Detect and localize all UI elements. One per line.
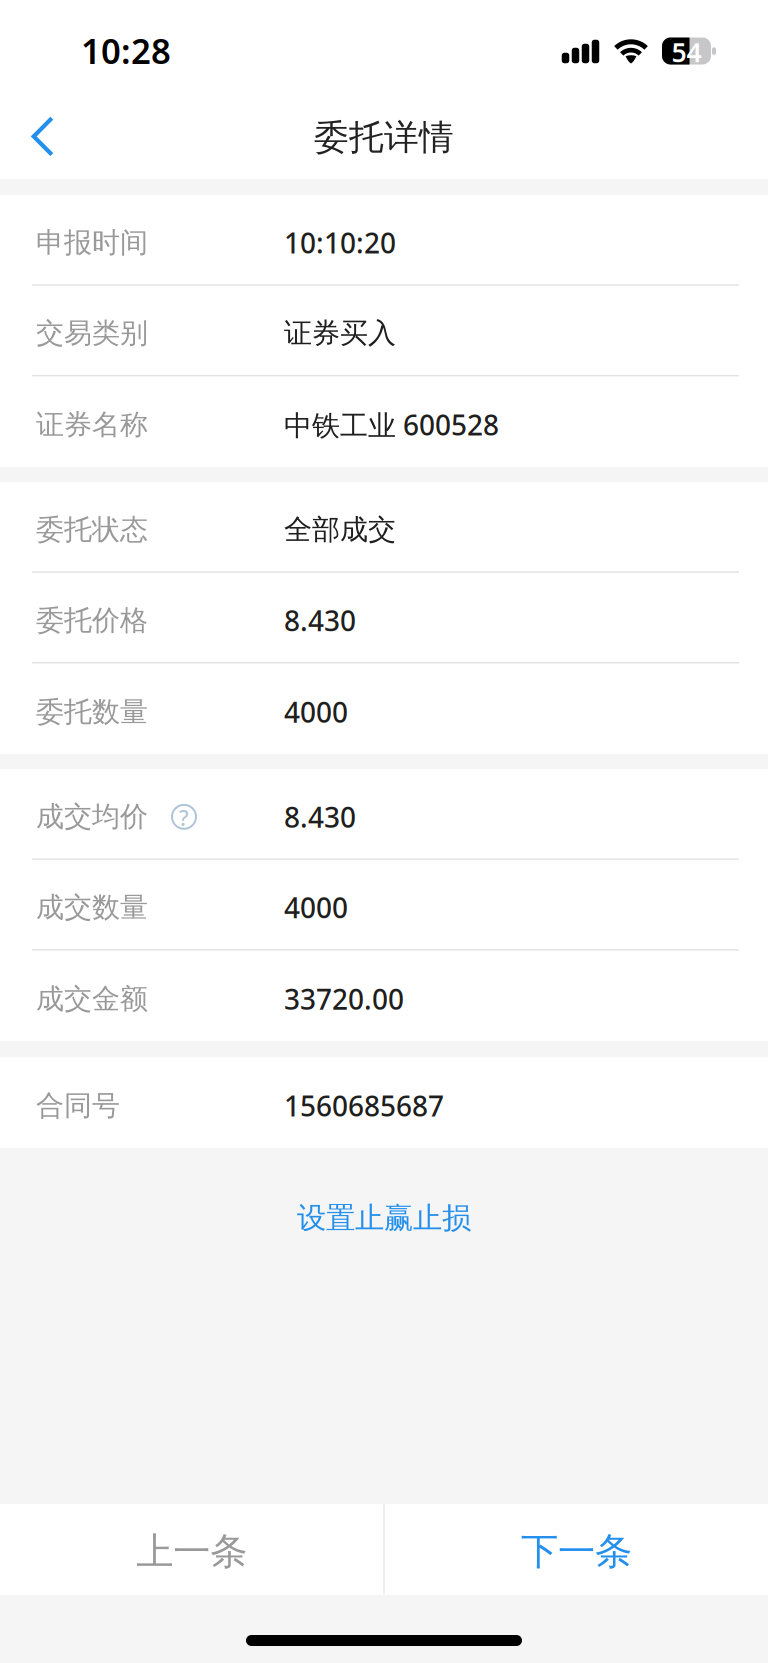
staticText: 中铁工业 600528	[284, 406, 499, 443]
staticText: 上一条	[136, 1529, 247, 1574]
staticText: ?	[179, 804, 189, 832]
staticText: 10:10:20	[284, 224, 396, 261]
staticText: 1560685687	[284, 1087, 444, 1124]
staticText: 全部成交	[284, 512, 396, 547]
button[interactable]: 下一条	[385, 1504, 768, 1595]
staticText: 交易类别	[36, 316, 148, 350]
staticText: 33720.00	[284, 980, 404, 1018]
staticText: 设置止赢止损	[297, 1200, 471, 1236]
staticText: 成交均价	[36, 800, 148, 834]
button[interactable]: 设置止赢止损	[234, 1186, 534, 1250]
staticText: 申报时间	[36, 225, 148, 260]
staticText: 54	[671, 34, 701, 70]
staticText: 证券名称	[36, 408, 148, 442]
staticText: 委托数量	[36, 695, 148, 729]
button[interactable]: 返回	[6, 94, 78, 174]
staticText: 委托价格	[36, 603, 148, 638]
staticText: 证券买入	[284, 316, 396, 350]
button[interactable]: 上一条	[0, 1504, 383, 1595]
staticText: 下一条	[521, 1529, 632, 1574]
staticText: 成交金额	[36, 982, 148, 1016]
staticText: 合同号	[36, 1088, 120, 1123]
button[interactable]: 成交均价说明	[172, 805, 196, 829]
staticText: 委托状态	[36, 512, 148, 547]
staticText: 10:28	[81, 27, 171, 73]
staticText: 4000	[284, 889, 348, 926]
staticText: 4000	[284, 693, 348, 730]
staticText: 成交数量	[36, 890, 148, 925]
staticText: 8.430	[284, 798, 356, 835]
staticText: 委托详情	[314, 116, 454, 159]
staticText: 8.430	[284, 602, 356, 639]
